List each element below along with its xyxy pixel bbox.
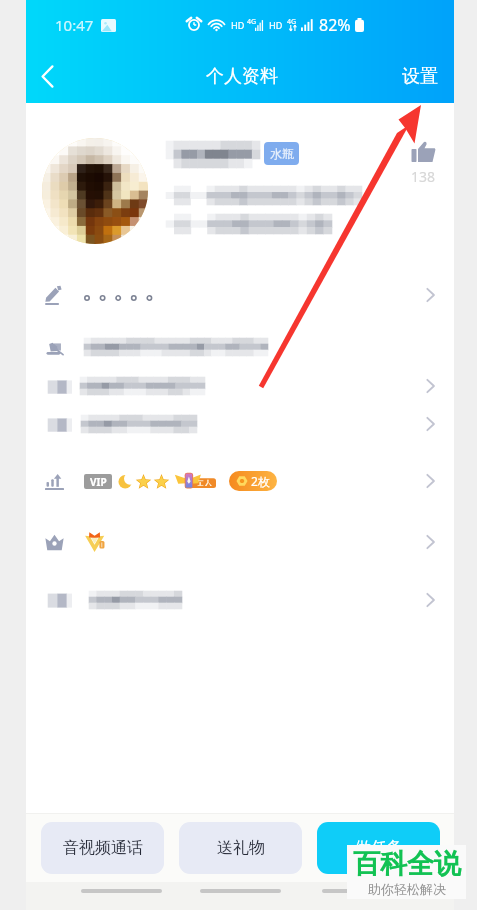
button[interactable] xyxy=(26,521,454,563)
button[interactable]: Likes xyxy=(403,140,443,186)
button[interactable] xyxy=(26,365,454,407)
button[interactable]: 音视频通话 xyxy=(41,822,164,874)
button[interactable] xyxy=(26,403,454,445)
staticText: 10:47 xyxy=(55,15,94,35)
staticText: VIP xyxy=(90,475,107,489)
staticText: HD xyxy=(231,19,245,31)
staticText: 做任务 xyxy=(355,838,403,858)
staticText: 助你轻松解决 xyxy=(368,881,446,897)
staticText: 138 xyxy=(411,167,436,186)
staticText: 设置 xyxy=(402,65,438,88)
staticText: 4G xyxy=(247,17,257,27)
staticText: 送礼物 xyxy=(217,838,265,858)
staticText: 百科全说 xyxy=(353,847,461,881)
staticText: 水瓶 xyxy=(270,146,294,161)
button[interactable]: 送礼物 xyxy=(179,822,302,874)
button[interactable] xyxy=(26,579,454,621)
button[interactable]: Back xyxy=(26,50,68,103)
staticText: 82% xyxy=(319,14,351,36)
staticText: 2枚 xyxy=(251,473,270,489)
staticText: 音视频通话 xyxy=(63,838,143,858)
button[interactable] xyxy=(26,274,454,316)
staticText: 4G xyxy=(287,17,297,27)
staticText: HD xyxy=(269,19,283,31)
button[interactable]: 做任务 xyxy=(317,822,440,874)
staticText: 个人资料 xyxy=(206,65,278,88)
button[interactable]: VIP xyxy=(26,460,454,502)
button[interactable]: Avatar xyxy=(42,138,148,244)
button[interactable]: 设置 xyxy=(402,50,438,103)
button[interactable] xyxy=(26,326,454,368)
